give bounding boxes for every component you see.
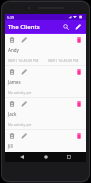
button[interactable]: Home bbox=[39, 152, 53, 162]
button[interactable]: Client details bbox=[7, 35, 17, 45]
button[interactable]: Delete client bbox=[74, 67, 84, 77]
button[interactable]: Add client bbox=[72, 21, 83, 32]
button[interactable]: Edit client bbox=[19, 99, 29, 109]
button[interactable]: Edit client bbox=[19, 67, 29, 77]
button[interactable]: Edit client bbox=[19, 35, 29, 45]
staticText: No activity yet bbox=[8, 122, 32, 127]
staticText: 08/01 10:45:09 PM bbox=[8, 58, 39, 63]
button[interactable]: Back bbox=[15, 152, 29, 162]
button[interactable]: Recent apps bbox=[62, 152, 76, 162]
button[interactable]: Delete client bbox=[74, 99, 84, 109]
button[interactable]: Delete client bbox=[74, 131, 84, 141]
button[interactable]: Client details bbox=[7, 131, 17, 141]
button[interactable]: Edit client bbox=[19, 131, 29, 141]
staticText: No activity yet bbox=[8, 90, 32, 95]
button[interactable]: Delete client bbox=[74, 35, 84, 45]
button[interactable]: Client details bbox=[5, 33, 86, 65]
button[interactable]: Client details bbox=[7, 67, 17, 77]
staticText: 08/01 10:45:09 PM bbox=[48, 58, 79, 63]
button[interactable]: Client details bbox=[5, 66, 86, 97]
button[interactable]: Client details bbox=[5, 130, 86, 152]
staticText: The Clients bbox=[8, 23, 40, 31]
staticText: 5:39 bbox=[7, 15, 14, 20]
button[interactable]: Search bbox=[60, 21, 71, 32]
button[interactable]: Client details bbox=[5, 98, 86, 129]
staticText: James bbox=[8, 79, 21, 85]
staticText: Jack bbox=[8, 111, 17, 117]
button[interactable]: Client details bbox=[7, 99, 17, 109]
staticText: Andy bbox=[8, 47, 19, 53]
staticText: Jill bbox=[8, 143, 13, 149]
